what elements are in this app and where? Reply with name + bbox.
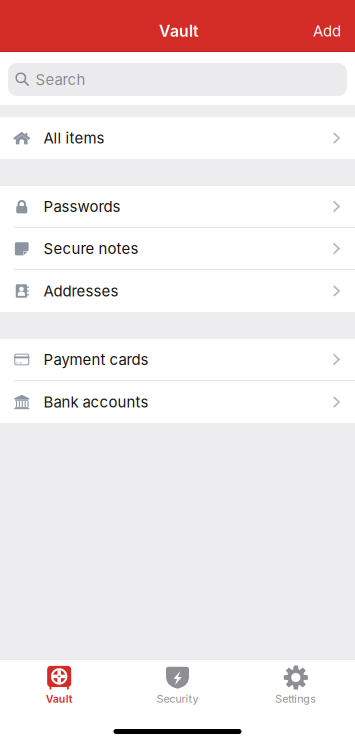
staticText: Search [35,70,85,89]
staticText: Vault [159,21,199,40]
button[interactable]: Addresses [0,270,355,312]
button[interactable]: Vault [0,659,118,705]
staticText: Addresses [43,282,118,300]
staticText: Secure notes [43,239,138,258]
staticText: Bank accounts [43,393,148,411]
button[interactable]: Secure notes [0,228,355,270]
button[interactable]: Security [118,659,237,705]
button[interactable]: Settings [237,659,355,705]
staticText: All items [43,129,104,147]
staticText: Add [313,22,341,40]
button[interactable]: Passwords [0,186,355,228]
staticText: Security [156,692,198,705]
button[interactable]: Add [303,16,351,46]
staticText: Passwords [43,197,120,216]
button[interactable]: All items [0,117,355,159]
button[interactable]: Payment cards [0,339,355,381]
staticText: Payment cards [43,350,148,369]
staticText: Vault [46,692,73,705]
button[interactable]: Bank accounts [0,381,355,423]
button[interactable]: Search [0,63,355,96]
staticText: Settings [275,692,316,705]
